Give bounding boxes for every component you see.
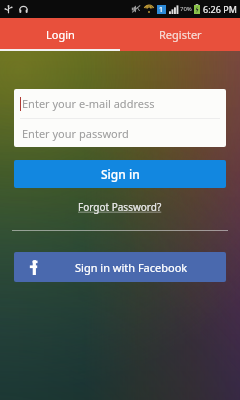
staticText: 70% bbox=[180, 5, 192, 13]
button[interactable]: Enter your e-mail address bbox=[14, 89, 226, 118]
button[interactable]: Sign in bbox=[14, 160, 226, 188]
staticText: Forgot Password? bbox=[78, 200, 162, 214]
button[interactable]: Facebook bbox=[14, 252, 226, 282]
staticText: 6:26 PM bbox=[203, 3, 237, 15]
button[interactable]: Enter your password bbox=[14, 119, 226, 147]
staticText: Enter your e-mail address bbox=[22, 96, 155, 111]
staticText: Login bbox=[46, 27, 75, 42]
staticText: Enter your password bbox=[22, 126, 129, 141]
staticText: Sign in with Facebook bbox=[75, 260, 188, 275]
button[interactable]: Register bbox=[120, 18, 240, 51]
button[interactable]: Forgot Password? bbox=[74, 198, 166, 216]
staticText: Register bbox=[159, 27, 202, 42]
staticText: Sign in bbox=[101, 166, 140, 182]
other: Facebook bbox=[26, 259, 42, 275]
button[interactable]: Login bbox=[0, 18, 120, 51]
staticText: 1 bbox=[159, 5, 164, 14]
